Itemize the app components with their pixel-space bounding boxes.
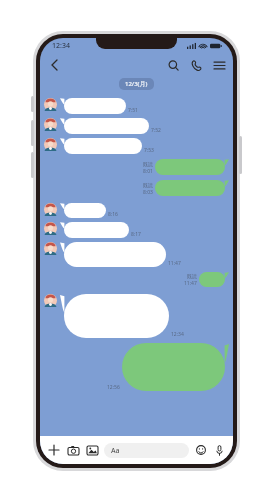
- staticText: 8:01: [143, 168, 153, 175]
- button[interactable]: Voice message: [212, 443, 226, 457]
- button[interactable]: 既読: [44, 159, 229, 175]
- staticText: 12:56: [107, 384, 120, 391]
- button[interactable]: 12:34: [44, 294, 229, 338]
- staticText: 11:47: [168, 260, 181, 267]
- staticText: 8:17: [131, 231, 141, 238]
- button[interactable]: Call: [189, 58, 203, 72]
- button[interactable]: Add: [47, 443, 61, 457]
- staticText: 既読: [187, 273, 197, 279]
- button[interactable]: Aa: [104, 443, 189, 458]
- button[interactable]: 8:16: [44, 203, 229, 218]
- button[interactable]: 11:47: [44, 242, 229, 267]
- button[interactable]: 7:51: [44, 98, 229, 114]
- staticText: 既読: [143, 161, 153, 167]
- staticText: 8:03: [143, 189, 153, 196]
- staticText: 8:16: [108, 211, 118, 218]
- button[interactable]: Camera: [66, 443, 80, 457]
- button[interactable]: Back: [46, 57, 62, 73]
- button[interactable]: Menu: [212, 58, 226, 72]
- staticText: 12:34: [52, 41, 70, 51]
- button[interactable]: 8:17: [44, 222, 229, 238]
- button[interactable]: Photos: [85, 443, 99, 457]
- button[interactable]: 12:56: [44, 343, 229, 391]
- button[interactable]: Emoji: [194, 443, 208, 457]
- staticText: 11:47: [184, 280, 197, 287]
- staticText: Aa: [111, 446, 120, 456]
- staticText: 7:51: [128, 107, 138, 114]
- button[interactable]: 12/3(月): [125, 80, 148, 88]
- button[interactable]: 7:52: [44, 118, 229, 134]
- staticText: 7:53: [144, 147, 154, 154]
- staticText: 12/3(月): [125, 80, 148, 88]
- staticText: 既読: [143, 182, 153, 188]
- button[interactable]: 既読: [44, 180, 229, 196]
- button[interactable]: 7:53: [44, 138, 229, 154]
- button[interactable]: Search: [166, 58, 180, 72]
- button[interactable]: 既読: [44, 272, 229, 287]
- staticText: 7:52: [151, 127, 161, 134]
- staticText: 12:34: [171, 331, 184, 338]
